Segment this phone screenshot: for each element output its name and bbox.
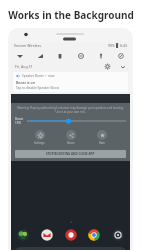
staticText: 15%	[15, 121, 21, 125]
button[interactable]: Gmail	[40, 228, 54, 242]
button[interactable]: Battery saver	[55, 51, 65, 61]
button[interactable]: Flashlight	[96, 51, 106, 61]
button[interactable]: Speaker Boost • now	[13, 72, 128, 92]
staticText: Tap to disable Speaker Boost	[16, 86, 60, 90]
staticText: Boost is on	[16, 80, 35, 85]
button[interactable]: Rate	[95, 129, 109, 146]
staticText: Settings	[34, 141, 45, 145]
staticText: 6:43	[120, 43, 127, 48]
button[interactable]: Search	[15, 247, 126, 250]
button[interactable]: Share	[64, 129, 78, 146]
staticText: Fri, Aug 31	[15, 64, 33, 69]
button[interactable]: Mobile data	[35, 51, 45, 61]
button[interactable]: Wi-Fi	[15, 51, 25, 61]
staticText: 99%	[108, 43, 115, 48]
button[interactable]: Settings	[32, 129, 47, 146]
button[interactable]: Auto rotate	[116, 51, 126, 61]
button[interactable]: Chrome	[87, 228, 101, 242]
button[interactable]: Settings	[104, 63, 111, 70]
button[interactable]: Expand	[119, 63, 126, 70]
staticText: Speaker Boost • now	[22, 74, 55, 78]
staticText: Boost	[15, 117, 24, 121]
button[interactable]: Camera	[111, 228, 125, 242]
button[interactable]: Do not disturb	[76, 51, 86, 61]
staticText: STOP BOOSTING AND CLOSE APP	[46, 152, 95, 156]
button[interactable]: Boost level	[27, 117, 126, 125]
button[interactable]: Phone	[16, 228, 30, 242]
button[interactable]: STOP BOOSTING AND CLOSE APP	[15, 150, 126, 158]
staticText: Share	[67, 141, 75, 145]
staticText: Rate	[99, 141, 105, 145]
staticText: Works in the Background	[8, 8, 134, 22]
staticText: Verizon Wireless	[14, 43, 41, 48]
staticText: Warning: Playing audio at high volumes m…	[15, 106, 126, 114]
button[interactable]: Camera app	[64, 228, 78, 242]
